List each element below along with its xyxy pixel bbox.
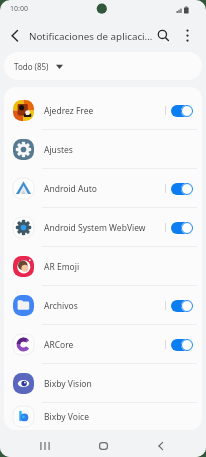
staticText: Android System WebView [44, 222, 165, 234]
button[interactable] [171, 183, 193, 195]
button[interactable] [83, 430, 123, 457]
button[interactable] [171, 300, 193, 312]
staticText: Todo (85) [14, 61, 49, 72]
button[interactable]: Ajedrez Free [4, 91, 202, 130]
staticText: Notificaciones de aplicaci... [29, 30, 154, 43]
staticText: ARCore [44, 339, 165, 351]
button[interactable] [171, 222, 193, 234]
button[interactable]: ARCore [4, 325, 202, 364]
button[interactable]: AR Emoji [4, 247, 202, 286]
button[interactable] [171, 105, 193, 117]
button[interactable]: Todo (85) [4, 52, 202, 80]
button[interactable]: Android System WebView [4, 208, 202, 247]
button[interactable] [25, 430, 65, 457]
staticText: Ajustes [44, 144, 193, 156]
staticText: Bixby Vision [44, 378, 193, 390]
staticText: 10:00 [10, 4, 28, 14]
button[interactable] [171, 339, 193, 351]
staticText: AR Emoji [44, 261, 193, 273]
staticText: Bixby Voice [44, 411, 193, 423]
staticText: Ajedrez Free [44, 105, 165, 117]
button[interactable] [155, 27, 172, 44]
button[interactable] [180, 27, 196, 45]
button[interactable]: Android Auto [4, 169, 202, 208]
button[interactable]: Ajustes [4, 130, 202, 169]
staticText: Archivos [44, 300, 165, 312]
button[interactable]: Bixby Vision [4, 364, 202, 403]
button[interactable]: Bixby Voice [4, 403, 202, 430]
button[interactable] [141, 430, 181, 457]
button[interactable]: Archivos [4, 286, 202, 325]
staticText: Android Auto [44, 183, 165, 195]
button[interactable] [6, 28, 24, 44]
